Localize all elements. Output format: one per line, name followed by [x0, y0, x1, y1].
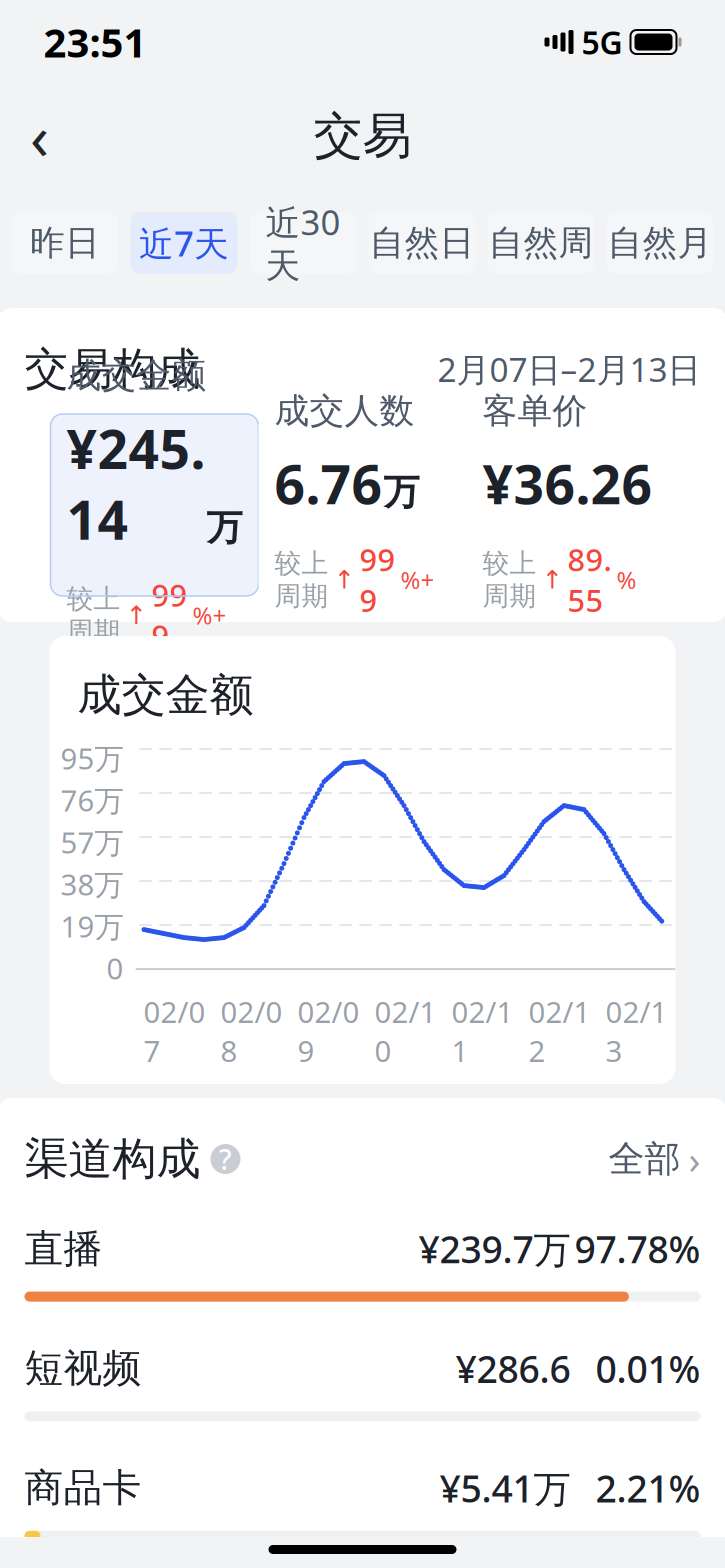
- staticText: 02/09: [297, 992, 359, 1070]
- staticText: ‹: [30, 95, 49, 177]
- button[interactable]: 商品卡: [0, 1441, 725, 1561]
- staticText: 02/11: [451, 992, 513, 1070]
- staticText: 成交金额: [77, 668, 253, 722]
- staticText: 76万: [60, 781, 123, 820]
- staticText: 交易: [313, 106, 411, 166]
- staticText: 商品卡: [24, 1464, 141, 1512]
- button[interactable]: 昨日: [11, 212, 118, 274]
- button[interactable]: Help: [210, 1144, 240, 1174]
- staticText: 万: [383, 470, 419, 514]
- button[interactable]: 成交金额: [50, 414, 258, 596]
- staticText: 成交金额: [66, 354, 206, 397]
- staticText: 成交人数: [274, 390, 414, 432]
- button[interactable]: 成交人数: [258, 414, 466, 596]
- button[interactable]: 全部: [608, 1133, 700, 1185]
- staticText: 短视频: [24, 1345, 141, 1392]
- staticText: 自然周: [488, 222, 593, 264]
- staticText: 38万: [60, 865, 123, 904]
- button[interactable]: 自然月: [606, 212, 713, 274]
- staticText: %+: [192, 599, 226, 631]
- staticText: 999: [359, 539, 395, 620]
- staticText: 直播: [24, 1225, 102, 1273]
- button[interactable]: Back: [7, 104, 71, 168]
- staticText: 自然日: [369, 222, 474, 264]
- staticText: ¥5.41万: [439, 1463, 570, 1513]
- staticText: ¥239.7万: [418, 1224, 570, 1274]
- staticText: 较上周期: [274, 547, 328, 612]
- staticText: 昨日: [30, 222, 100, 264]
- staticText: 02/13: [605, 992, 667, 1070]
- staticText: 客单价: [482, 390, 587, 432]
- staticText: 2.21%: [595, 1463, 700, 1513]
- staticText: 89.55: [567, 539, 611, 620]
- staticText: 0.01%: [595, 1344, 700, 1393]
- staticText: 23:51: [43, 15, 146, 68]
- staticText: 万: [206, 506, 242, 550]
- button[interactable]: 自然日: [368, 212, 475, 274]
- staticText: 02/08: [220, 992, 282, 1070]
- staticText: 交易构成: [24, 342, 200, 396]
- staticText: ¥245.14: [66, 413, 205, 554]
- staticText: 0: [106, 949, 123, 988]
- staticText: %: [616, 564, 636, 596]
- staticText: 02/07: [143, 992, 205, 1070]
- staticText: 02/10: [374, 992, 436, 1070]
- button[interactable]: 直播: [0, 1202, 725, 1322]
- staticText: ¥286.6: [455, 1344, 570, 1393]
- staticText: 999: [151, 574, 187, 656]
- staticText: ↑: [541, 565, 562, 594]
- staticText: 19万: [60, 907, 123, 946]
- staticText: ↑: [125, 601, 146, 630]
- staticText: 自然月: [607, 222, 712, 264]
- staticText: 5G: [581, 21, 622, 63]
- staticText: 57万: [60, 823, 123, 862]
- button[interactable]: 短视频: [0, 1322, 725, 1441]
- staticText: 较上周期: [66, 582, 120, 648]
- button[interactable]: 近7天: [130, 212, 237, 274]
- staticText: 近7天: [139, 220, 229, 266]
- staticText: 较上周期: [482, 547, 536, 612]
- staticText: ↑: [333, 565, 354, 594]
- button[interactable]: 自然周: [487, 212, 594, 274]
- staticText: 2月07日–2月13日: [437, 347, 700, 391]
- staticText: 渠道构成: [24, 1132, 200, 1186]
- staticText: %+: [400, 564, 434, 596]
- staticText: 6.76: [274, 448, 382, 519]
- staticText: 近30天: [265, 199, 340, 287]
- staticText: 95万: [60, 739, 123, 778]
- staticText: ¥36.26: [482, 448, 652, 519]
- staticText: 02/12: [528, 992, 590, 1070]
- staticText: ?: [219, 1140, 232, 1178]
- button[interactable]: 近30天: [249, 212, 356, 274]
- staticText: 97.78%: [574, 1224, 700, 1274]
- staticText: ›: [688, 1133, 700, 1185]
- staticText: 全部: [608, 1137, 680, 1181]
- button[interactable]: 客单价: [466, 414, 674, 596]
